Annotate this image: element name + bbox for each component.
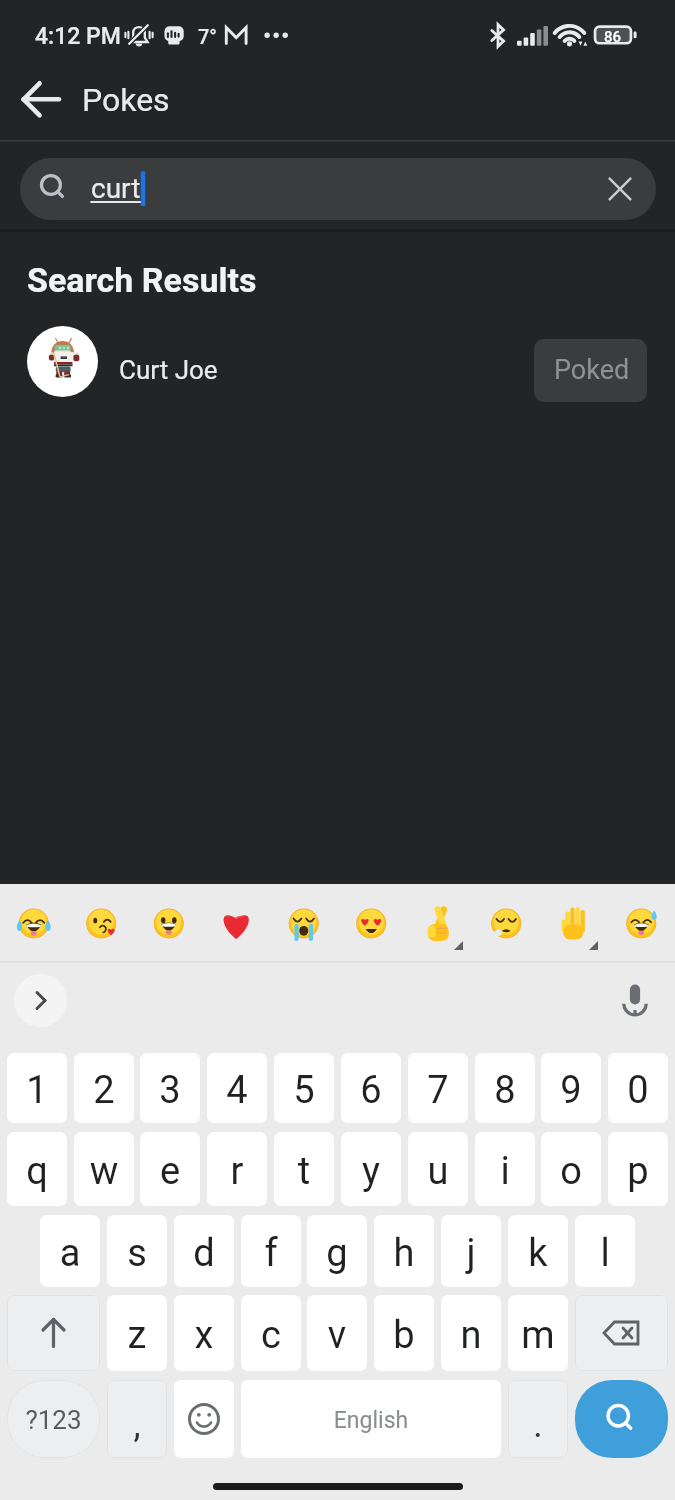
staticText: curt: [91, 172, 141, 205]
staticText: a: [40, 1231, 100, 1287]
button[interactable]: Comma: [107, 1380, 167, 1458]
button[interactable]: Voice input: [609, 974, 661, 1026]
button[interactable]: v: [307, 1295, 367, 1371]
button[interactable]: e: [140, 1132, 200, 1206]
staticText: l: [575, 1231, 635, 1287]
button[interactable]: y: [341, 1132, 401, 1206]
button[interactable]: m: [508, 1295, 568, 1371]
staticText: z: [107, 1313, 167, 1371]
button[interactable]: s: [107, 1215, 167, 1287]
staticText: 0: [608, 1068, 668, 1123]
button[interactable]: c: [241, 1295, 301, 1371]
staticText: 5: [274, 1068, 334, 1123]
button[interactable]: p: [608, 1132, 668, 1206]
button[interactable]: n: [441, 1295, 501, 1371]
button[interactable]: Clear search: [598, 166, 642, 210]
button[interactable]: k: [508, 1215, 568, 1287]
button[interactable]: f: [241, 1215, 301, 1287]
staticText: j: [441, 1231, 501, 1287]
button[interactable]: b: [374, 1295, 434, 1371]
staticText: m: [508, 1313, 568, 1371]
staticText: ,: [107, 1404, 167, 1458]
button[interactable]: a: [40, 1215, 100, 1287]
staticText: ?123: [7, 1405, 100, 1458]
staticText: o: [541, 1149, 601, 1206]
button[interactable]: j: [441, 1215, 501, 1287]
button[interactable]: 3: [140, 1053, 200, 1123]
staticText: 4: [207, 1068, 267, 1123]
staticText: c: [241, 1313, 301, 1371]
staticText: Poked: [554, 354, 630, 386]
staticText: x: [174, 1313, 234, 1371]
button[interactable]: [20, 158, 656, 220]
staticText: q: [7, 1149, 67, 1206]
staticText: 2: [74, 1068, 134, 1123]
button[interactable]: [0, 318, 675, 404]
button[interactable]: r: [207, 1132, 267, 1206]
staticText: i: [475, 1149, 535, 1206]
button[interactable]: g: [307, 1215, 367, 1287]
staticText: p: [608, 1149, 668, 1206]
staticText: t: [274, 1149, 334, 1206]
staticText: e: [140, 1149, 200, 1206]
staticText: f: [241, 1231, 301, 1287]
staticText: 3: [140, 1068, 200, 1123]
button[interactable]: Backspace: [575, 1295, 668, 1371]
button[interactable]: x: [174, 1295, 234, 1371]
button[interactable]: z: [107, 1295, 167, 1371]
staticText: 6: [341, 1068, 401, 1123]
staticText: 7: [408, 1068, 468, 1123]
staticText: Search Results: [27, 260, 257, 300]
button[interactable]: w: [74, 1132, 134, 1206]
staticText: Pokes: [82, 81, 170, 119]
staticText: k: [508, 1231, 568, 1287]
button[interactable]: o: [541, 1132, 601, 1206]
button[interactable]: h: [374, 1215, 434, 1287]
button[interactable]: Back: [14, 72, 68, 126]
button[interactable]: t: [274, 1132, 334, 1206]
button[interactable]: Emoji: [174, 1380, 234, 1458]
button[interactable]: 5: [274, 1053, 334, 1123]
button[interactable]: More suggestions: [14, 974, 67, 1027]
button[interactable]: Period: [508, 1380, 568, 1458]
staticText: 7°: [198, 25, 217, 48]
staticText: Curt Joe: [119, 355, 218, 385]
button[interactable]: u: [408, 1132, 468, 1206]
button[interactable]: [534, 339, 647, 402]
button[interactable]: Shift: [7, 1295, 100, 1371]
staticText: 4:12 PM: [35, 23, 121, 50]
staticText: s: [107, 1231, 167, 1287]
button[interactable]: 0: [608, 1053, 668, 1123]
staticText: 8: [475, 1068, 535, 1123]
staticText: d: [174, 1231, 234, 1287]
staticText: 9: [541, 1068, 601, 1123]
staticText: English: [241, 1407, 501, 1458]
button[interactable]: Space: [241, 1380, 501, 1458]
staticText: y: [341, 1149, 401, 1206]
staticText: r: [207, 1149, 267, 1206]
staticText: h: [374, 1231, 434, 1287]
button[interactable]: Symbols: [7, 1380, 100, 1458]
button[interactable]: 4: [207, 1053, 267, 1123]
button[interactable]: q: [7, 1132, 67, 1206]
button[interactable]: Search: [575, 1380, 668, 1458]
button[interactable]: 8: [475, 1053, 535, 1123]
staticText: w: [74, 1149, 134, 1206]
staticText: .: [508, 1404, 568, 1458]
button[interactable]: 9: [541, 1053, 601, 1123]
staticText: b: [374, 1313, 434, 1371]
button[interactable]: 1: [7, 1053, 67, 1123]
button[interactable]: 7: [408, 1053, 468, 1123]
staticText: u: [408, 1149, 468, 1206]
button[interactable]: l: [575, 1215, 635, 1287]
button[interactable]: 2: [74, 1053, 134, 1123]
button[interactable]: 6: [341, 1053, 401, 1123]
button[interactable]: d: [174, 1215, 234, 1287]
staticText: 86: [604, 28, 622, 46]
staticText: v: [307, 1313, 367, 1371]
staticText: g: [307, 1231, 367, 1287]
button[interactable]: i: [475, 1132, 535, 1206]
staticText: n: [441, 1313, 501, 1371]
staticText: 1: [7, 1068, 67, 1123]
